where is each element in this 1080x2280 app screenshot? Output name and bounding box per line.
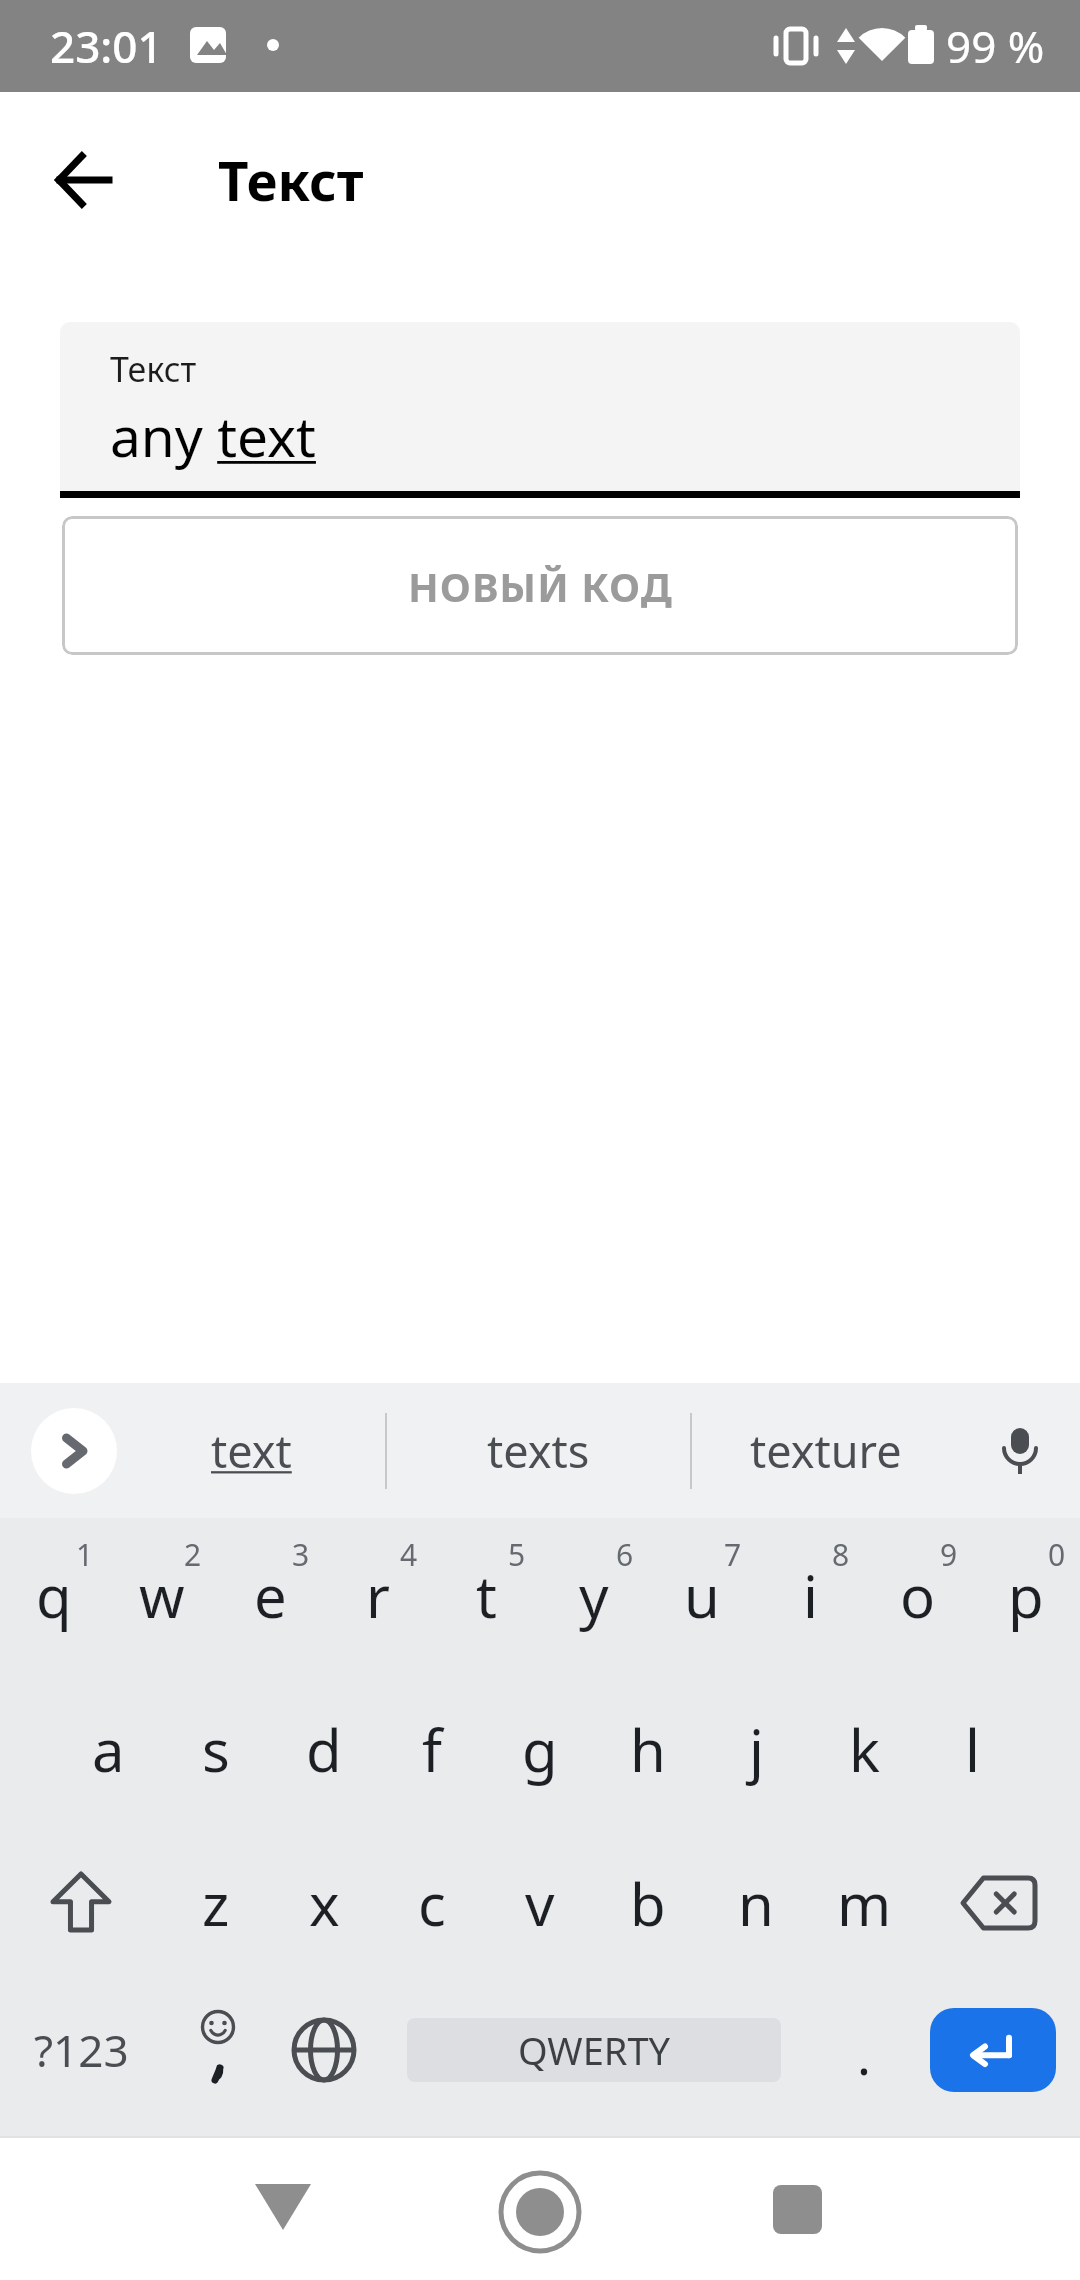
button[interactable]: a bbox=[54, 1672, 162, 1826]
staticText: 23:01 bbox=[50, 16, 163, 76]
staticText: f bbox=[422, 1710, 442, 1789]
button[interactable]: q bbox=[0, 1518, 108, 1672]
button[interactable]: n bbox=[702, 1826, 810, 1980]
staticText: 4 bbox=[400, 1534, 418, 1575]
staticText: any text bbox=[110, 398, 316, 473]
staticText: s bbox=[202, 1710, 230, 1789]
staticText: j bbox=[749, 1710, 764, 1789]
staticText: y bbox=[579, 1556, 609, 1635]
button[interactable]: d bbox=[270, 1672, 378, 1826]
button[interactable]: j bbox=[702, 1672, 810, 1826]
button[interactable] bbox=[918, 1980, 1080, 2136]
staticText: 6 bbox=[616, 1534, 634, 1575]
staticText: . bbox=[857, 2019, 871, 2090]
staticText: m bbox=[837, 1864, 892, 1943]
staticText: НОВЫЙ КОД bbox=[408, 559, 673, 613]
button[interactable] bbox=[960, 1383, 1080, 1518]
button[interactable]: y bbox=[540, 1518, 648, 1672]
staticText: r bbox=[366, 1556, 390, 1635]
staticText: o bbox=[900, 1556, 936, 1635]
button[interactable] bbox=[0, 1826, 162, 1980]
staticText: h bbox=[630, 1710, 666, 1789]
button[interactable] bbox=[162, 1980, 270, 2136]
staticText: 2 bbox=[184, 1534, 202, 1575]
button[interactable] bbox=[270, 1980, 378, 2136]
staticText: l bbox=[965, 1710, 980, 1789]
staticText: d bbox=[306, 1710, 342, 1789]
button[interactable]: e bbox=[216, 1518, 324, 1672]
button[interactable]: g bbox=[486, 1672, 594, 1826]
staticText: 1 bbox=[76, 1534, 94, 1575]
staticText: Текст bbox=[110, 346, 197, 392]
staticText: v bbox=[525, 1864, 555, 1943]
button[interactable]: QWERTY bbox=[378, 1980, 810, 2136]
button[interactable]: m bbox=[810, 1826, 918, 1980]
button[interactable]: s bbox=[162, 1672, 270, 1826]
staticText: c bbox=[418, 1864, 446, 1943]
button[interactable]: Текст bbox=[60, 322, 1020, 498]
button[interactable]: w bbox=[108, 1518, 216, 1672]
staticText: t bbox=[476, 1556, 497, 1635]
button[interactable] bbox=[918, 1826, 1080, 1980]
button[interactable]: t bbox=[432, 1518, 540, 1672]
staticText: 8 bbox=[832, 1534, 850, 1575]
button[interactable]: texture bbox=[692, 1383, 960, 1518]
button[interactable]: ?123 bbox=[0, 1980, 162, 2136]
button[interactable]: u bbox=[648, 1518, 756, 1672]
button[interactable]: l bbox=[918, 1672, 1026, 1826]
button[interactable]: r bbox=[324, 1518, 432, 1672]
button[interactable] bbox=[480, 2136, 600, 2280]
button[interactable]: k bbox=[810, 1672, 918, 1826]
button[interactable]: texts bbox=[387, 1383, 690, 1518]
staticText: u bbox=[684, 1556, 720, 1635]
staticText: 5 bbox=[508, 1534, 526, 1575]
staticText: n bbox=[738, 1864, 774, 1943]
staticText: a bbox=[92, 1710, 125, 1789]
button[interactable] bbox=[223, 2136, 343, 2280]
staticText: text bbox=[211, 1420, 292, 1481]
button[interactable]: . bbox=[810, 1980, 918, 2136]
button[interactable]: text bbox=[117, 1383, 385, 1518]
button[interactable]: b bbox=[594, 1826, 702, 1980]
button[interactable]: v bbox=[486, 1826, 594, 1980]
staticText: 99 % bbox=[946, 16, 1045, 76]
button[interactable]: x bbox=[270, 1826, 378, 1980]
button[interactable] bbox=[31, 1408, 117, 1494]
staticText: texts bbox=[487, 1420, 590, 1481]
button[interactable]: h bbox=[594, 1672, 702, 1826]
staticText: q bbox=[36, 1556, 72, 1635]
staticText: z bbox=[202, 1864, 230, 1943]
staticText: QWERTY bbox=[518, 2024, 671, 2076]
button[interactable]: c bbox=[378, 1826, 486, 1980]
staticText: g bbox=[522, 1710, 558, 1789]
staticText: 7 bbox=[724, 1534, 742, 1575]
staticText: b bbox=[630, 1864, 666, 1943]
button[interactable]: o bbox=[864, 1518, 972, 1672]
staticText: texture bbox=[750, 1420, 902, 1481]
button[interactable]: i bbox=[756, 1518, 864, 1672]
button[interactable]: z bbox=[162, 1826, 270, 1980]
staticText: 0 bbox=[1048, 1534, 1066, 1575]
button[interactable]: НОВЫЙ КОД bbox=[62, 516, 1018, 655]
staticText: Текст bbox=[218, 144, 364, 216]
staticText: ?123 bbox=[34, 2020, 129, 2080]
staticText: i bbox=[803, 1556, 818, 1635]
staticText: k bbox=[849, 1710, 880, 1789]
button[interactable] bbox=[737, 2136, 857, 2280]
staticText: w bbox=[139, 1556, 185, 1635]
staticText: 3 bbox=[292, 1534, 310, 1575]
staticText: 9 bbox=[940, 1534, 958, 1575]
button[interactable]: p bbox=[972, 1518, 1080, 1672]
staticText: p bbox=[1008, 1556, 1044, 1635]
button[interactable]: f bbox=[378, 1672, 486, 1826]
staticText: x bbox=[309, 1864, 340, 1943]
button[interactable] bbox=[36, 132, 132, 228]
staticText: e bbox=[254, 1556, 287, 1635]
